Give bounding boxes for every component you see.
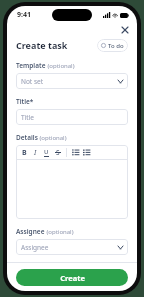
staticText: I xyxy=(34,148,37,158)
staticText: Title xyxy=(21,113,34,122)
button[interactable]: Close xyxy=(119,24,130,35)
staticText: Create task xyxy=(16,39,68,51)
staticText: Create xyxy=(60,273,85,283)
staticText: To do xyxy=(108,42,124,50)
button[interactable]: Assignee xyxy=(16,239,128,255)
staticText: S xyxy=(56,148,60,157)
staticText: B xyxy=(22,148,27,158)
button[interactable]: Not set xyxy=(16,73,128,89)
button[interactable]: To do xyxy=(97,39,128,52)
button[interactable]: Strikethrough xyxy=(52,147,63,158)
button[interactable]: Bold xyxy=(19,147,30,158)
staticText: Not set xyxy=(21,77,44,86)
staticText: Title* xyxy=(16,97,34,106)
staticText: Details xyxy=(16,133,38,142)
button[interactable]: Bulleted list xyxy=(70,147,81,158)
button[interactable]: Underline xyxy=(41,147,52,158)
staticText: Assignee xyxy=(21,243,49,252)
staticText: (optional) xyxy=(38,134,67,142)
staticText: (optional) xyxy=(46,62,75,70)
staticText: Assignee xyxy=(16,227,45,236)
button[interactable]: Title xyxy=(16,109,128,125)
staticText: (optional) xyxy=(45,228,74,236)
staticText: U xyxy=(44,148,49,156)
button[interactable]: Create xyxy=(16,269,128,286)
staticText: 9:41 xyxy=(17,10,31,20)
button[interactable]: Numbered list xyxy=(81,147,92,158)
button[interactable]: Italic xyxy=(30,147,41,158)
staticText: Template xyxy=(16,61,46,70)
